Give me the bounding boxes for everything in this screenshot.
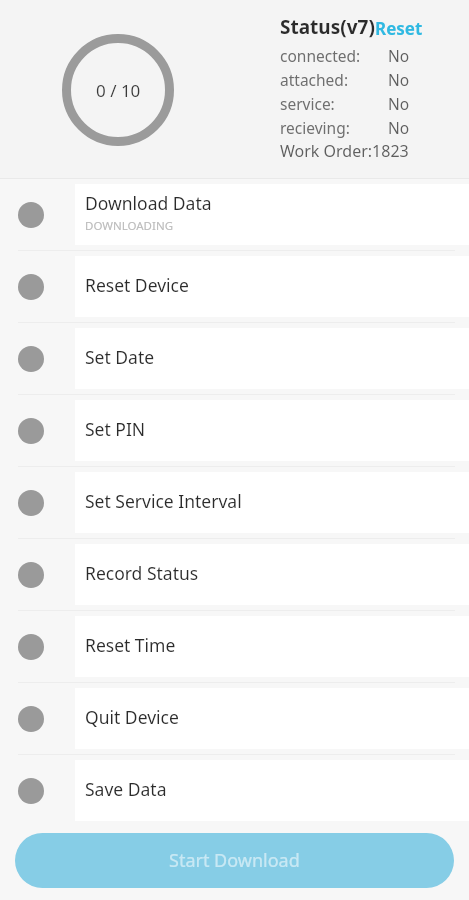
button[interactable]: Set Date [0,323,469,394]
staticText: Set Date [85,345,155,369]
button[interactable]: Quit Device [0,683,469,754]
button[interactable]: Save Data [0,755,469,826]
button[interactable]: Record Status [0,539,469,610]
button[interactable]: Reset Time [0,611,469,682]
staticText: No [388,69,410,90]
staticText: Download Data [85,191,212,215]
staticText: Status(v7) [280,14,375,40]
button[interactable]: Download Data [0,179,469,250]
staticText: 0 / 10 [96,79,141,102]
staticText: No [388,117,410,138]
button[interactable]: Set Service Interval [0,467,469,538]
staticText: recieving: [280,117,350,138]
staticText: Reset Time [85,633,176,657]
button[interactable]: Set PIN [0,395,469,466]
staticText: DOWNLOADING [85,218,173,234]
button[interactable]: Reset [375,17,423,40]
staticText: Save Data [85,777,167,801]
staticText: Quit Device [85,705,179,729]
staticText: attached: [280,69,349,90]
staticText: Reset [375,17,423,40]
staticText: Set Service Interval [85,489,242,513]
staticText: Record Status [85,561,199,585]
staticText: Work Order:1823 [280,140,409,162]
other: Download progress 0 of 10 [62,34,174,146]
staticText: Start Download [169,848,300,873]
staticText: No [388,45,410,66]
staticText: No [388,93,410,114]
staticText: Set PIN [85,417,146,441]
staticText: Reset Device [85,273,189,297]
staticText: service: [280,93,335,114]
staticText: connected: [280,45,361,66]
button[interactable]: Start Download [15,833,454,888]
button[interactable]: Reset Device [0,251,469,322]
